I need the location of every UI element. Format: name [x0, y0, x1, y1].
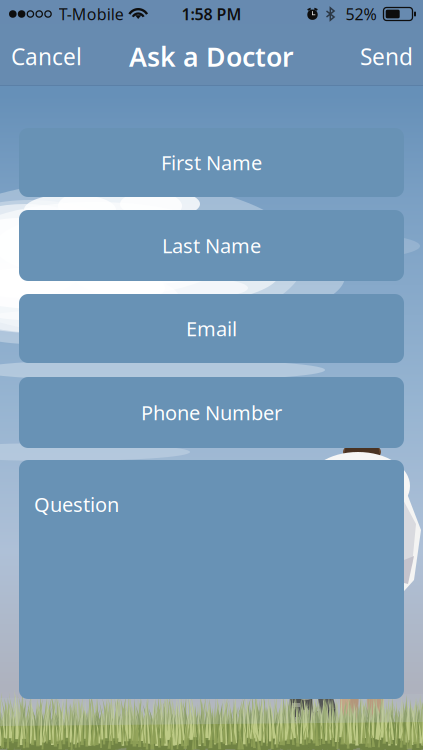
button[interactable]: Phone Number — [19, 377, 404, 448]
button[interactable]: First Name — [19, 128, 404, 197]
staticText: Ask a Doctor — [129, 39, 294, 74]
staticText: T-Mobile — [59, 3, 124, 25]
staticText: Phone Number — [141, 399, 282, 426]
staticText: 52% — [345, 3, 376, 25]
staticText: Cancel — [11, 41, 82, 71]
staticText: First Name — [161, 149, 262, 176]
button[interactable]: Last Name — [19, 210, 404, 281]
button[interactable]: Question — [19, 460, 404, 699]
staticText: Question — [34, 491, 119, 518]
staticText: 1:58 PM — [181, 3, 241, 25]
button[interactable]: Send — [350, 28, 423, 85]
staticText: Send — [360, 41, 413, 71]
staticText: Email — [186, 315, 237, 342]
button[interactable]: Email — [19, 294, 404, 363]
staticText: Last Name — [162, 232, 261, 259]
button[interactable]: Cancel — [0, 28, 92, 85]
